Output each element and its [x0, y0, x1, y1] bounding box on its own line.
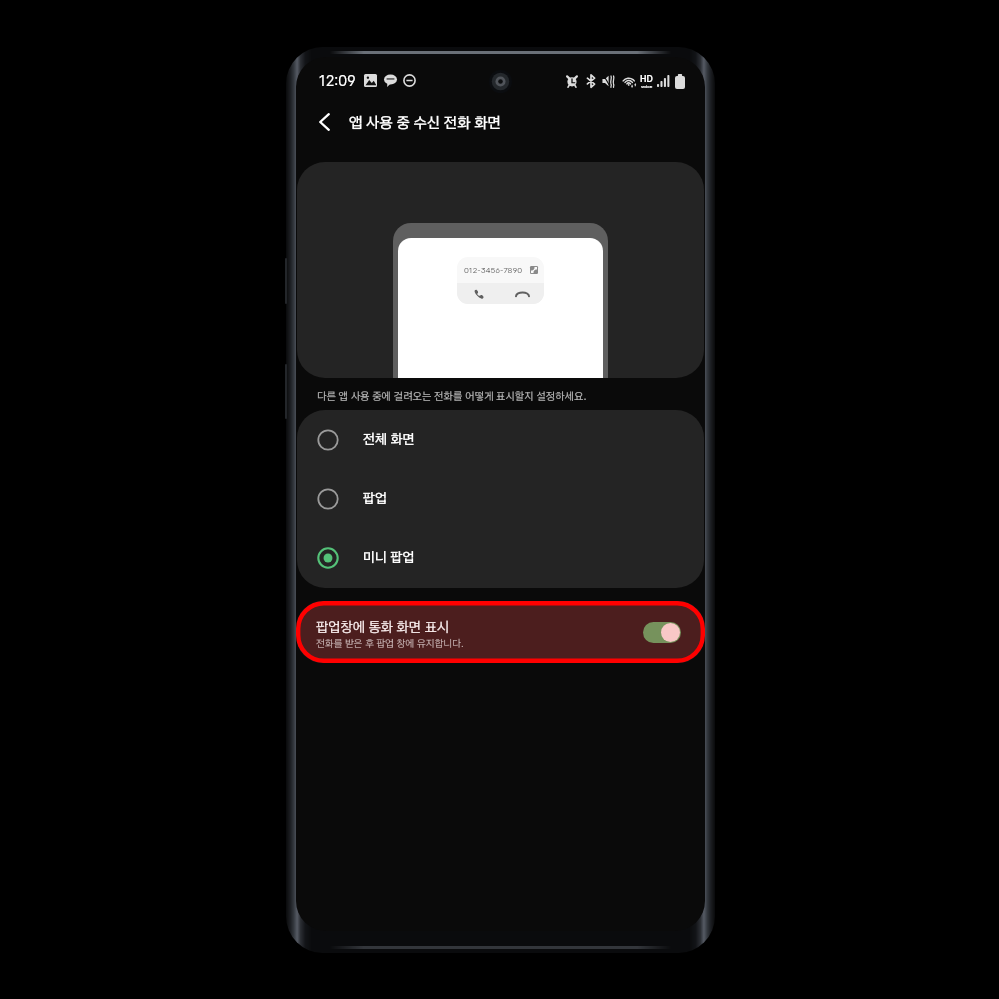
staticText: 앱 사용 중 수신 전화 화면: [349, 113, 501, 131]
button[interactable]: Toggle show call screen in pop-up window: [643, 622, 681, 643]
staticText: 다른 앱 사용 중에 걸려오는 전화를 어떻게 표시할지 설정하세요.: [317, 390, 587, 403]
staticText: voice: [641, 84, 653, 89]
staticText: 전체 화면: [363, 431, 415, 448]
button[interactable]: Back: [304, 102, 344, 142]
staticText: 팝업: [363, 490, 387, 507]
staticText: HD: [640, 73, 653, 84]
button[interactable]: 미니 팝업: [297, 528, 704, 587]
button[interactable]: 팝업: [297, 469, 704, 528]
staticText: 012-3456-7890: [464, 265, 523, 275]
staticText: 전화를 받은 후 팝업 창에 유지합니다.: [316, 637, 464, 649]
staticText: 12:09: [319, 72, 356, 89]
staticText: 팝업창에 통화 화면 표시: [316, 618, 449, 635]
staticText: 미니 팝업: [363, 549, 415, 566]
button[interactable]: 팝업창에 통화 화면 표시: [296, 601, 705, 663]
button[interactable]: 전체 화면: [297, 410, 704, 469]
